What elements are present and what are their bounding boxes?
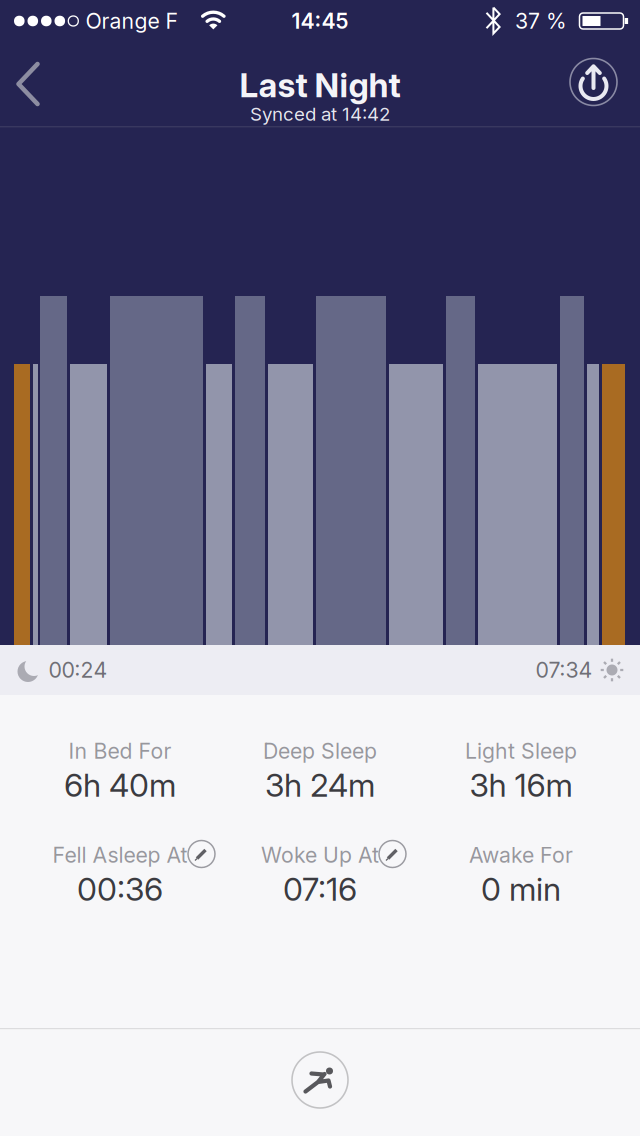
staticText: In Bed For	[68, 738, 171, 764]
staticText: 3h 16m	[469, 766, 572, 804]
staticText: Woke Up At	[261, 842, 379, 868]
button[interactable]: Share	[570, 58, 617, 105]
staticText: Awake For	[469, 842, 573, 868]
staticText: 0 min	[481, 870, 561, 908]
staticText: Synced at 14:42	[250, 103, 390, 125]
button[interactable]: Activity	[292, 1052, 348, 1108]
staticText: Fell Asleep At	[52, 842, 187, 868]
staticText: 07:16	[283, 870, 357, 908]
staticText: Last Night	[239, 65, 400, 105]
staticText: Light Sleep	[465, 738, 577, 764]
staticText: 14:45	[291, 8, 348, 34]
staticText: 00:24	[48, 657, 107, 683]
button[interactable]: Edit woke up time	[210, 837, 430, 907]
staticText: 6h 40m	[64, 766, 176, 804]
staticText: Orange F	[85, 8, 178, 34]
staticText: 07:34	[535, 657, 592, 683]
button[interactable]: Back	[13, 59, 43, 109]
button[interactable]: Edit fell asleep time	[10, 837, 230, 907]
staticText: 00:36	[77, 870, 163, 908]
staticText: 37 %	[515, 8, 567, 34]
staticText: Deep Sleep	[263, 738, 377, 764]
staticText: 3h 24m	[265, 766, 375, 804]
